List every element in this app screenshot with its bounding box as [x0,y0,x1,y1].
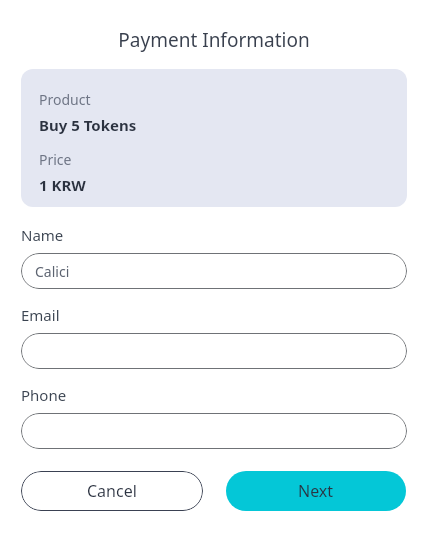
staticText: Email [21,305,60,325]
staticText: Phone [21,385,67,405]
staticText: Next [298,480,334,502]
staticText: Product [39,90,91,109]
staticText: Buy 5 Tokens [39,115,137,135]
button[interactable]: Next [226,471,406,511]
staticText: Price [39,150,72,169]
button[interactable] [21,333,407,369]
staticText: Cancel [87,480,137,502]
button[interactable] [21,413,407,449]
button[interactable]: Cancel [21,471,203,511]
staticText: Payment Information [21,27,407,53]
button[interactable]: Calici [21,253,407,289]
staticText: 1 KRW [39,175,86,195]
staticText: Calici [35,262,70,281]
staticText: Name [21,225,64,245]
